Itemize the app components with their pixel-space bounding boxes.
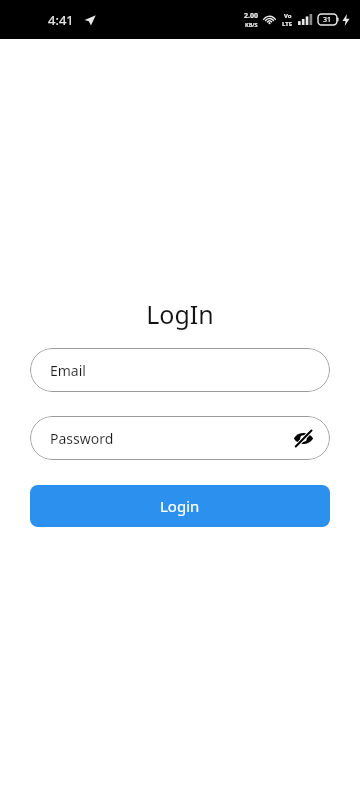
staticText: KB/S <box>245 21 258 28</box>
staticText: LogIn <box>0 297 360 331</box>
staticText: 31 <box>323 15 332 25</box>
button[interactable]: Login <box>30 485 330 527</box>
staticText: 4:41 <box>48 11 74 29</box>
staticText: Password <box>50 429 114 448</box>
staticText: Email <box>50 361 86 380</box>
button[interactable]: Password <box>30 416 330 460</box>
staticText: LTE <box>282 20 293 28</box>
staticText: 2.00 <box>244 11 258 21</box>
staticText: Login <box>160 496 200 516</box>
button[interactable]: Email <box>30 348 330 392</box>
staticText: Vo <box>284 12 292 20</box>
button[interactable]: Show password <box>290 425 316 451</box>
